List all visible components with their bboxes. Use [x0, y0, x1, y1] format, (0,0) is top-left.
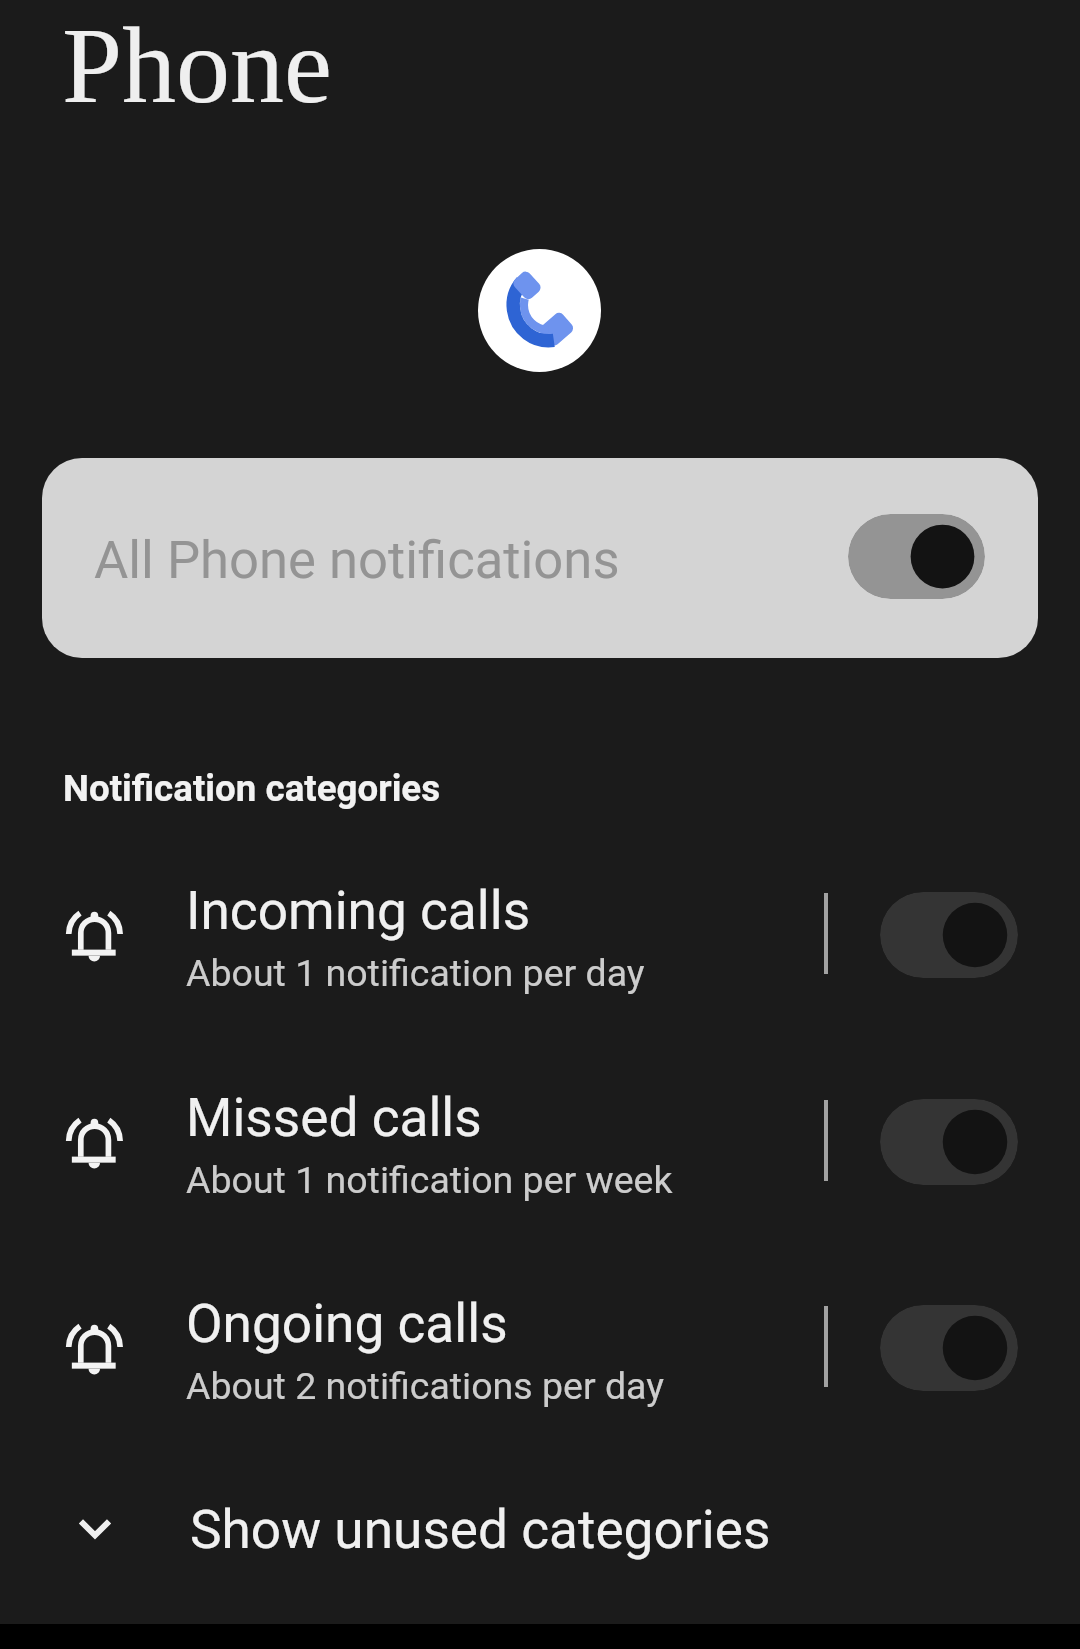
- staticText: Notification categories: [63, 767, 441, 810]
- button[interactable]: Notifications active: [0, 830, 1080, 1036]
- staticText: Missed calls: [186, 1087, 482, 1149]
- button[interactable]: All Phone notifications: [42, 458, 1038, 658]
- staticText: Phone: [62, 6, 332, 126]
- button[interactable]: Ongoing calls notifications toggle, on: [880, 1305, 1018, 1391]
- staticText: About 1 notification per week: [186, 1158, 673, 1202]
- staticText: About 2 notifications per day: [186, 1364, 664, 1408]
- button[interactable]: Incoming calls notifications toggle, on: [880, 892, 1018, 978]
- button[interactable]: Show unused categories: [0, 1455, 1080, 1595]
- other: Notifications active: [62, 1318, 125, 1381]
- other: Notifications active: [62, 1112, 125, 1175]
- staticText: All Phone notifications: [94, 529, 848, 591]
- staticText: About 1 notification per day: [186, 951, 645, 995]
- other: Show unused categories: [64, 1496, 126, 1558]
- button[interactable]: Missed calls notifications toggle, on: [880, 1099, 1018, 1185]
- button[interactable]: All Phone notifications toggle, on: [848, 514, 985, 599]
- staticText: Ongoing calls: [186, 1293, 508, 1355]
- button[interactable]: Notifications active: [0, 1243, 1080, 1449]
- button[interactable]: Notifications active: [0, 1037, 1080, 1243]
- staticText: Incoming calls: [186, 880, 531, 942]
- staticText: Show unused categories: [190, 1499, 771, 1561]
- other: Notifications active: [62, 905, 125, 968]
